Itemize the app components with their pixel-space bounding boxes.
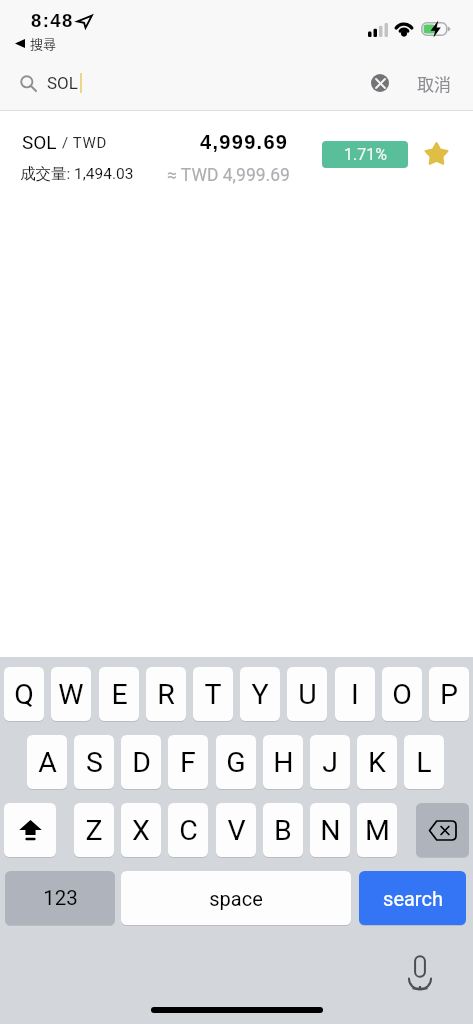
staticText: G — [226, 746, 246, 779]
staticText: H — [273, 746, 294, 779]
staticText: / TWD — [62, 134, 107, 152]
staticText: ≈ TWD 4,999.69 — [167, 165, 290, 186]
button[interactable]: R — [146, 667, 186, 721]
staticText: V — [227, 814, 246, 847]
staticText: E — [111, 678, 128, 711]
staticText: T — [204, 678, 222, 711]
button[interactable]: Add to favourites — [425, 142, 448, 165]
button[interactable]: 搜尋 — [15, 34, 57, 53]
staticText: Y — [251, 678, 269, 711]
staticText: B — [274, 814, 292, 847]
button[interactable]: I — [335, 667, 375, 721]
staticText: F — [180, 746, 196, 779]
staticText: J — [322, 746, 338, 779]
staticText: 123 — [43, 886, 78, 910]
button[interactable]: space — [121, 871, 351, 925]
staticText: 搜尋 — [30, 34, 57, 53]
button[interactable]: W — [51, 667, 91, 721]
staticText: Q — [14, 678, 34, 711]
button[interactable]: O — [382, 667, 422, 721]
staticText: I — [351, 678, 359, 711]
button[interactable]: 123 — [5, 871, 115, 925]
button[interactable]: X — [121, 803, 161, 857]
button[interactable]: Q — [4, 667, 44, 721]
staticText: X — [132, 814, 150, 847]
button[interactable]: Clear text — [371, 74, 389, 92]
staticText: K — [368, 746, 386, 779]
staticText: 4,999.69 — [200, 131, 289, 153]
button[interactable]: C — [168, 803, 208, 857]
button[interactable]: G — [216, 735, 256, 789]
button[interactable]: A — [27, 735, 67, 789]
button[interactable]: 1.71% — [322, 141, 408, 168]
staticText: SOL — [47, 73, 78, 93]
staticText: 8:48 — [31, 10, 74, 31]
button[interactable]: Y — [240, 667, 280, 721]
staticText: R — [157, 678, 175, 711]
staticText: O — [392, 678, 412, 711]
button[interactable]: S — [74, 735, 114, 789]
button[interactable]: B — [263, 803, 303, 857]
button[interactable]: N — [310, 803, 350, 857]
staticText: space — [209, 887, 263, 910]
staticText: D — [132, 746, 151, 779]
staticText: 1.71% — [344, 145, 387, 164]
button[interactable]: H — [263, 735, 303, 789]
button[interactable]: V — [216, 803, 256, 857]
button[interactable]: K — [357, 735, 397, 789]
button[interactable]: Z — [74, 803, 114, 857]
staticText: L — [416, 746, 432, 779]
staticText: search — [383, 887, 443, 910]
button[interactable]: Shift — [4, 803, 56, 857]
button[interactable]: L — [404, 735, 444, 789]
button[interactable]: SOL — [0, 111, 473, 181]
button[interactable]: U — [287, 667, 327, 721]
staticText: C — [179, 814, 198, 847]
staticText: A — [38, 746, 57, 779]
staticText: W — [58, 678, 84, 711]
staticText: M — [365, 814, 390, 847]
staticText: 成交量: 1,494.03 — [20, 164, 134, 184]
button[interactable]: search — [359, 871, 466, 925]
staticText: N — [320, 814, 341, 847]
staticText: SOL — [22, 131, 57, 153]
button[interactable]: Backspace — [416, 803, 469, 857]
button[interactable]: Dictate — [405, 952, 434, 991]
staticText: S — [86, 746, 103, 779]
staticText: U — [298, 678, 317, 711]
button[interactable]: 取消 — [417, 71, 451, 96]
staticText: Z — [85, 814, 103, 847]
button[interactable]: P — [429, 667, 469, 721]
button[interactable]: F — [168, 735, 208, 789]
button[interactable]: T — [193, 667, 233, 721]
button[interactable]: D — [121, 735, 161, 789]
button[interactable]: J — [310, 735, 350, 789]
staticText: P — [440, 678, 458, 711]
button[interactable]: M — [357, 803, 397, 857]
button[interactable]: E — [99, 667, 139, 721]
